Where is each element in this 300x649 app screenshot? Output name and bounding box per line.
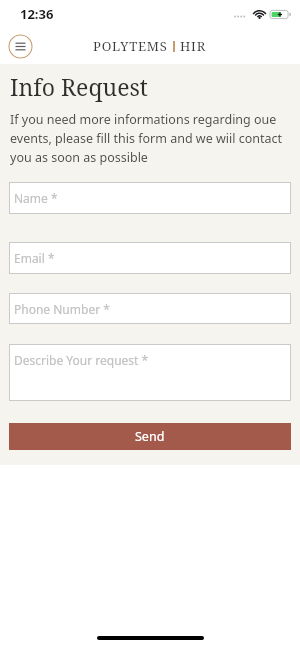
button[interactable]: Describe Your request * [9, 344, 291, 401]
staticText: Name * [14, 190, 58, 206]
button[interactable]: Name * [9, 182, 291, 214]
button[interactable]: Open navigation menu [8, 34, 33, 59]
staticText: Info Request [10, 71, 148, 102]
staticText: Send [135, 428, 165, 445]
staticText: If you need more informations regarding … [10, 111, 291, 166]
staticText: POLYTEMS [93, 37, 168, 55]
staticText: Email * [14, 250, 55, 266]
button[interactable]: Phone Number * [9, 293, 291, 324]
button[interactable]: Send [9, 423, 291, 450]
button[interactable]: Email * [9, 242, 291, 274]
staticText: 12:36 [20, 5, 54, 23]
staticText: HIR [180, 37, 207, 55]
staticText: Phone Number * [14, 301, 110, 317]
staticText: Describe Your request * [14, 352, 149, 368]
